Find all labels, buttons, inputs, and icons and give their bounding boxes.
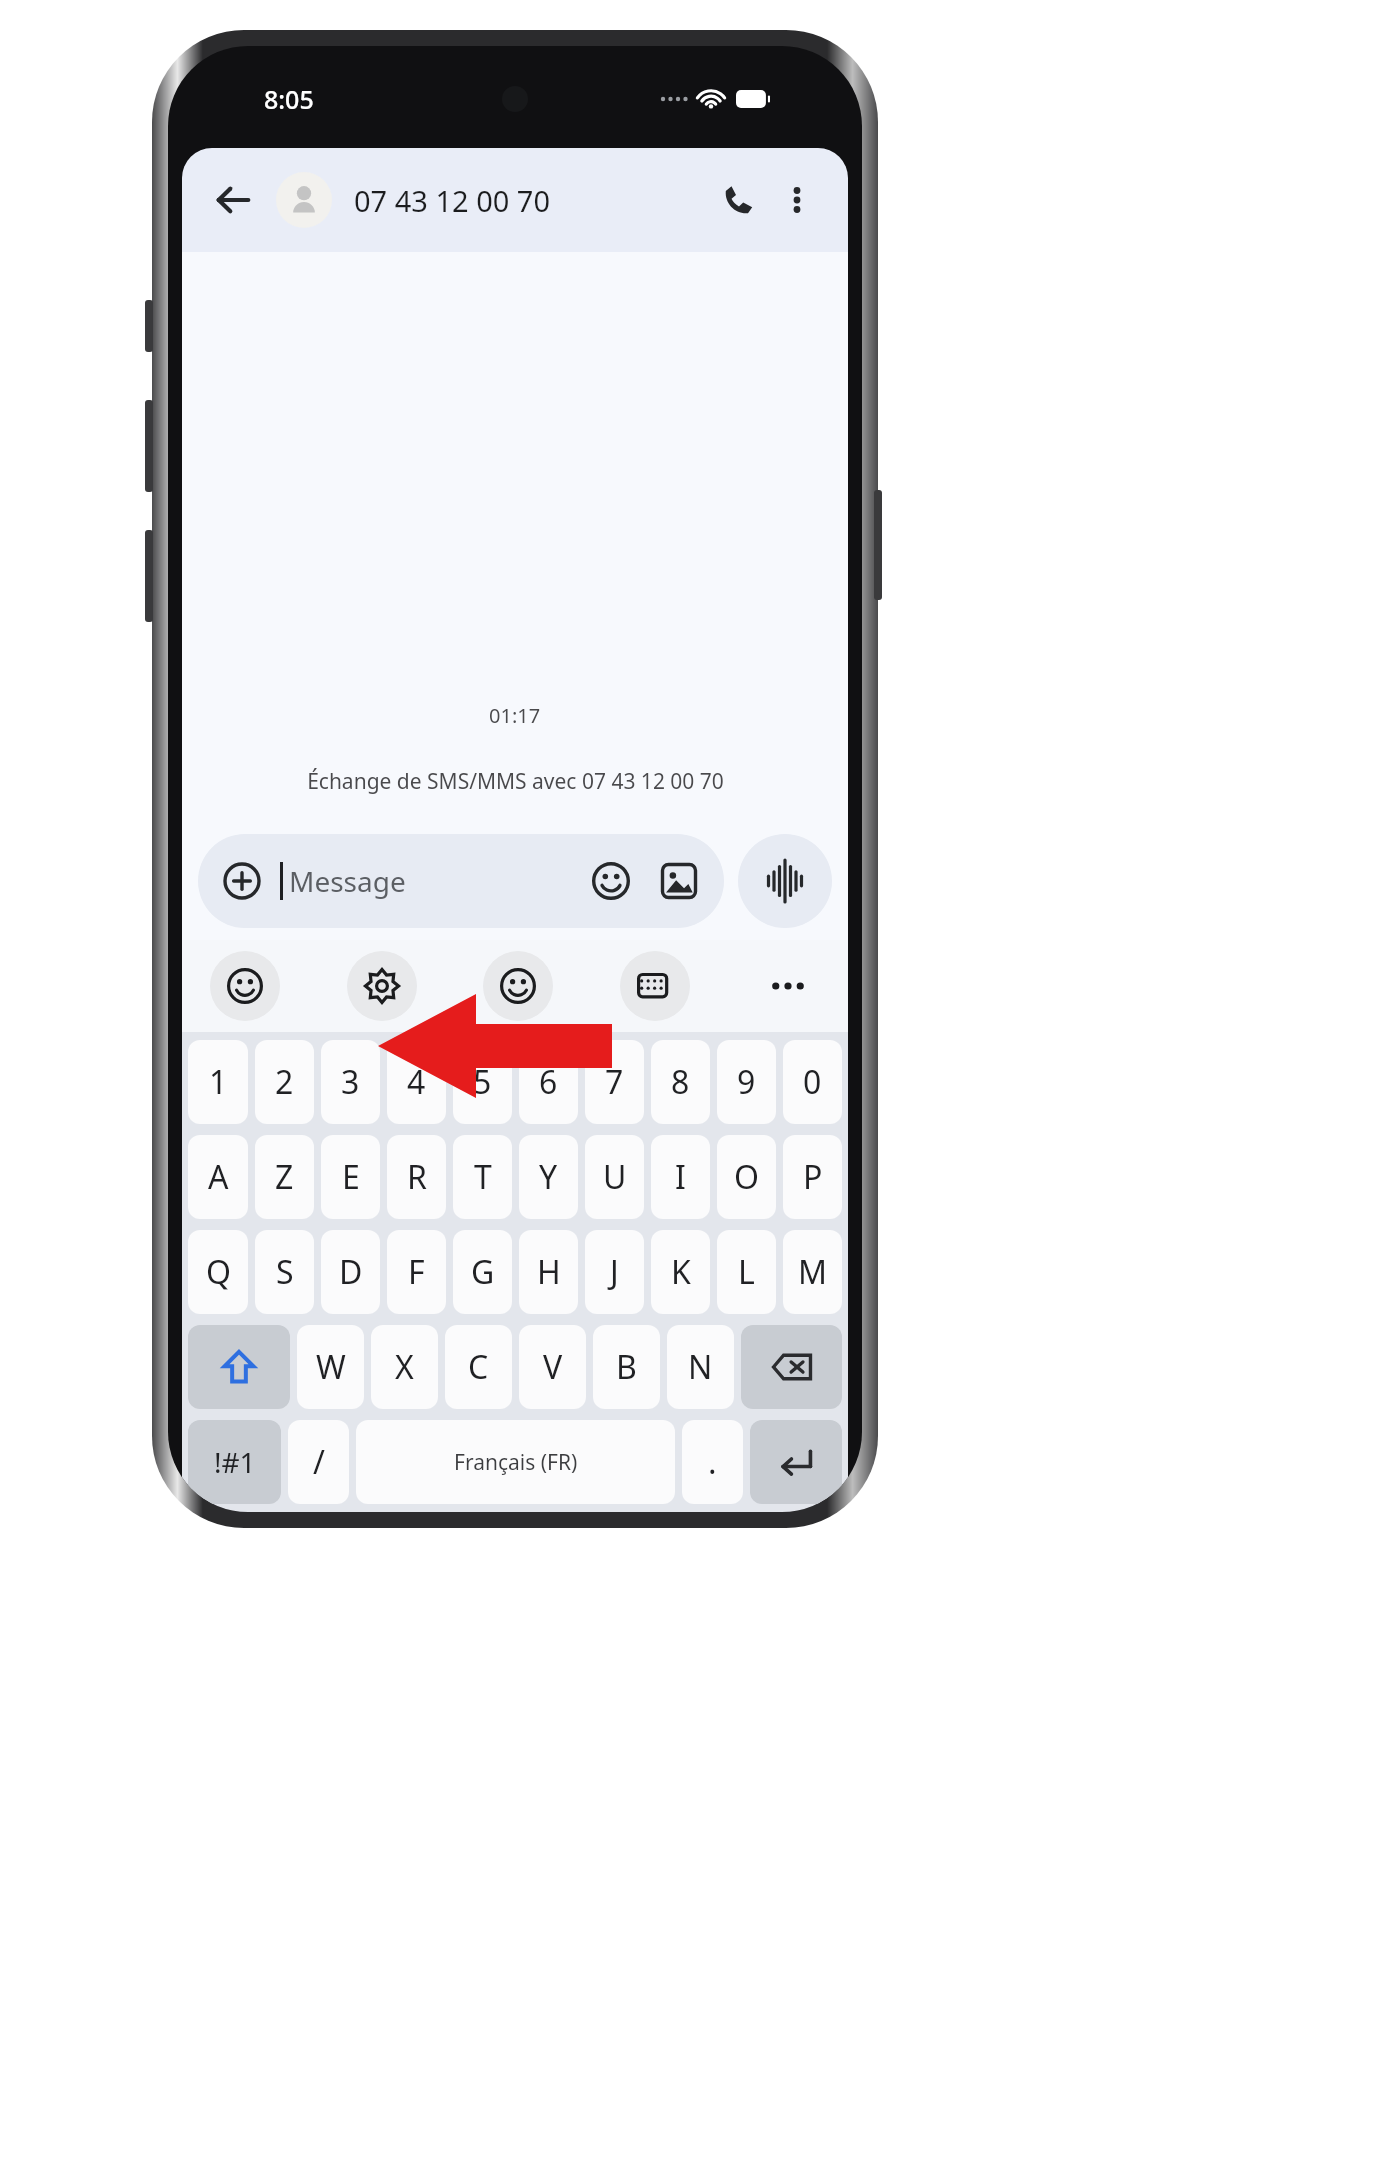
button[interactable]: Back — [204, 171, 262, 229]
button[interactable]: W — [297, 1325, 364, 1409]
button[interactable]: Français (FR) — [356, 1420, 675, 1504]
staticText: A — [208, 1155, 229, 1199]
staticText: 5 — [473, 1060, 492, 1104]
button[interactable]: J — [585, 1230, 644, 1314]
button[interactable]: Q — [188, 1230, 248, 1314]
button[interactable]: C — [445, 1325, 512, 1409]
button[interactable]: M — [783, 1230, 842, 1314]
button[interactable]: V — [519, 1325, 586, 1409]
staticText: P — [803, 1155, 823, 1199]
button[interactable]: 6 — [519, 1040, 578, 1124]
button[interactable]: Y — [519, 1135, 578, 1219]
staticText: B — [616, 1345, 637, 1389]
button[interactable]: Attach — [220, 859, 264, 903]
button[interactable]: T — [453, 1135, 512, 1219]
staticText: 07 43 12 00 70 — [354, 181, 551, 220]
staticText: 4 — [407, 1060, 426, 1104]
staticText: 2 — [275, 1060, 294, 1104]
staticText: E — [342, 1155, 360, 1199]
button[interactable]: Voice message — [738, 834, 832, 928]
staticText: 8:05 — [264, 82, 314, 116]
staticText: U — [603, 1155, 627, 1199]
button[interactable]: Backspace — [741, 1325, 842, 1409]
button[interactable]: L — [717, 1230, 776, 1314]
button[interactable]: I — [651, 1135, 710, 1219]
button[interactable]: Settings — [347, 951, 417, 1021]
button[interactable]: Attach — [198, 834, 724, 928]
staticText: F — [408, 1250, 425, 1294]
button[interactable]: A — [188, 1135, 248, 1219]
button[interactable]: O — [717, 1135, 776, 1219]
button[interactable]: 7 — [585, 1040, 644, 1124]
staticText: Y — [539, 1155, 558, 1199]
button[interactable]: P — [783, 1135, 842, 1219]
staticText: 0 — [803, 1060, 822, 1104]
staticText: T — [474, 1155, 492, 1199]
button[interactable]: Shift — [188, 1325, 290, 1409]
staticText: H — [537, 1250, 561, 1294]
button[interactable]: !#1 — [188, 1420, 281, 1504]
button[interactable]: G — [453, 1230, 512, 1314]
button[interactable]: Enter — [750, 1420, 842, 1504]
button[interactable]: Call — [710, 171, 768, 229]
staticText: Français (FR) — [454, 1448, 578, 1477]
staticText: Q — [206, 1250, 231, 1294]
button[interactable]: 0 — [783, 1040, 842, 1124]
staticText: 1 — [209, 1060, 228, 1104]
button[interactable]: X — [371, 1325, 438, 1409]
button[interactable]: 1 — [188, 1040, 248, 1124]
button[interactable]: B — [593, 1325, 660, 1409]
staticText: X — [395, 1345, 414, 1389]
button[interactable]: 2 — [255, 1040, 314, 1124]
staticText: G — [471, 1250, 495, 1294]
button[interactable]: 3 — [321, 1040, 380, 1124]
button[interactable]: Gallery — [656, 858, 702, 904]
staticText: Z — [275, 1155, 294, 1199]
staticText: Échange de SMS/MMS avec 07 43 12 00 70 — [307, 767, 724, 796]
staticText: S — [276, 1250, 294, 1294]
staticText: 7 — [605, 1060, 624, 1104]
staticText: N — [688, 1345, 713, 1389]
staticText: O — [734, 1155, 759, 1199]
button[interactable]: 8 — [651, 1040, 710, 1124]
button[interactable]: R — [387, 1135, 446, 1219]
staticText: I — [675, 1155, 686, 1199]
button[interactable]: K — [651, 1230, 710, 1314]
button[interactable]: Sticker — [483, 951, 553, 1021]
button[interactable]: Emoji — [588, 858, 634, 904]
button[interactable]: More — [756, 954, 820, 1018]
staticText: K — [671, 1250, 691, 1294]
staticText: 8 — [671, 1060, 690, 1104]
staticText: 01:17 — [489, 702, 541, 729]
staticText: . — [708, 1440, 717, 1484]
button[interactable]: Z — [255, 1135, 314, 1219]
button[interactable]: U — [585, 1135, 644, 1219]
button[interactable]: D — [321, 1230, 380, 1314]
staticText: Message — [289, 862, 406, 900]
button[interactable]: 5 — [453, 1040, 512, 1124]
button[interactable]: E — [321, 1135, 380, 1219]
button[interactable]: Emoji — [210, 951, 280, 1021]
staticText: !#1 — [214, 1443, 256, 1481]
staticText: 6 — [539, 1060, 558, 1104]
button[interactable]: More options — [768, 171, 826, 229]
button[interactable]: F — [387, 1230, 446, 1314]
button[interactable]: S — [255, 1230, 314, 1314]
button[interactable]: 9 — [717, 1040, 776, 1124]
button[interactable]: H — [519, 1230, 578, 1314]
staticText: D — [339, 1250, 363, 1294]
button[interactable]: / — [288, 1420, 349, 1504]
button[interactable]: Keyboard layout — [620, 951, 690, 1021]
button[interactable]: N — [667, 1325, 734, 1409]
staticText: W — [316, 1345, 346, 1389]
button[interactable]: Contact avatar — [276, 172, 332, 228]
staticText: M — [798, 1250, 828, 1294]
staticText: C — [468, 1345, 489, 1389]
button[interactable]: 4 — [387, 1040, 446, 1124]
staticText: V — [543, 1345, 563, 1389]
button[interactable]: . — [682, 1420, 743, 1504]
staticText: / — [313, 1440, 325, 1484]
staticText: L — [738, 1250, 755, 1294]
staticText: J — [610, 1250, 619, 1294]
staticText: R — [407, 1155, 427, 1199]
